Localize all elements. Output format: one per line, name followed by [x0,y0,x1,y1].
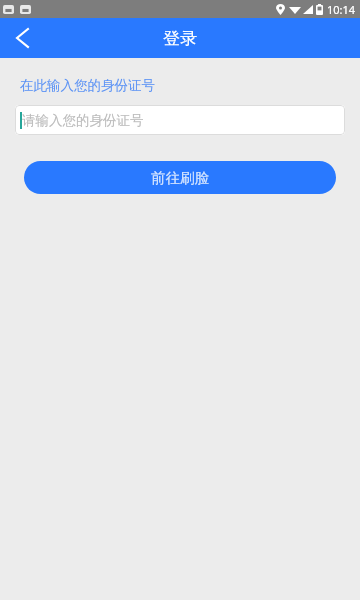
button[interactable]: 请输入您的身份证号 [15,105,345,135]
staticText: 在此输入您的身份证号 [20,77,155,94]
staticText: 登录 [163,28,197,49]
staticText: 请输入您的身份证号 [22,112,144,129]
button[interactable]: 前往刷脸 [24,161,336,194]
staticText: 前往刷脸 [151,169,209,187]
button[interactable]: Back [0,18,44,58]
staticText: 10:14 [327,2,356,17]
